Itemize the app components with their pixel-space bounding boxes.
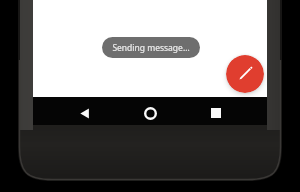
button[interactable]: Back	[68, 99, 100, 127]
button[interactable]: Recent apps	[200, 99, 232, 127]
button[interactable]: Compose message	[226, 55, 264, 93]
button[interactable]: Sending message…	[102, 37, 200, 58]
staticText: Sending message…	[112, 42, 190, 54]
button[interactable]: Home	[134, 99, 166, 127]
